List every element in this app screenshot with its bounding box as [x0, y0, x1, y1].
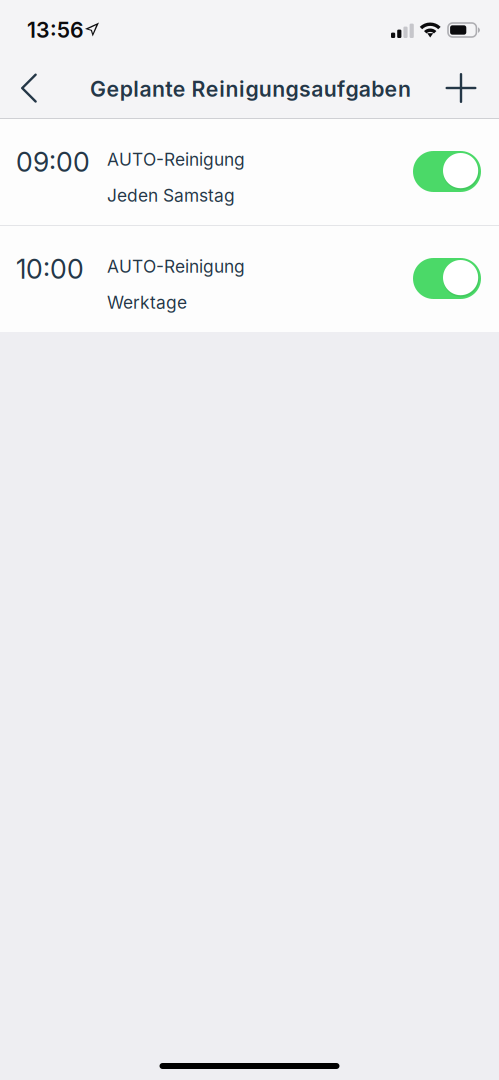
- button[interactable]: AUTO-Reinigung Jeden Samstag 09:00 enabl…: [413, 151, 481, 192]
- staticText: AUTO-Reinigung: [107, 256, 245, 277]
- staticText: AUTO-Reinigung: [107, 149, 245, 170]
- button[interactable]: 10:00: [0, 226, 499, 332]
- button[interactable]: 09:00: [0, 119, 499, 225]
- staticText: 13:56: [27, 17, 84, 43]
- staticText: Geplante Reinigungsaufgaben: [90, 76, 411, 102]
- button[interactable]: Back: [1, 57, 57, 119]
- staticText: Jeden Samstag: [107, 185, 235, 206]
- staticText: Werktage: [107, 292, 187, 313]
- staticText: 10:00: [16, 253, 84, 285]
- button[interactable]: Add: [433, 57, 489, 119]
- button[interactable]: AUTO-Reinigung Werktage 10:00 enabled: [413, 258, 481, 299]
- staticText: 09:00: [16, 146, 90, 178]
